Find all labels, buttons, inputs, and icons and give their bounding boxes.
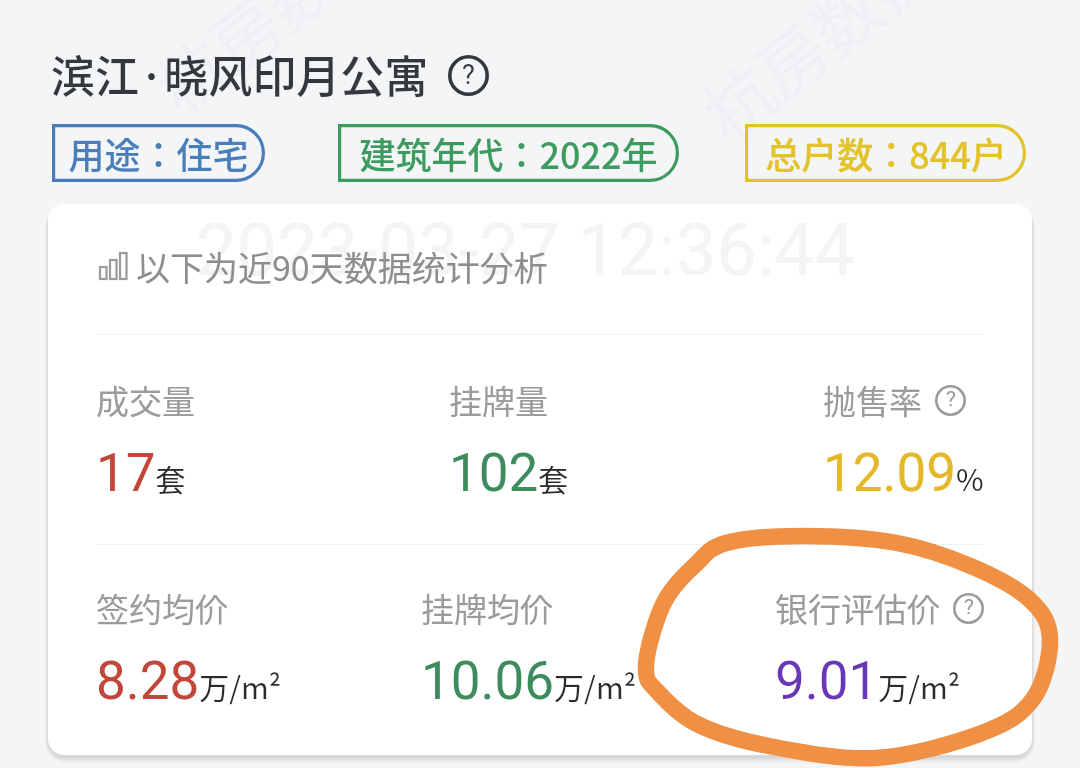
staticText: 杭房数据 bbox=[133, 0, 408, 133]
staticText: 8.28万/m² bbox=[96, 650, 282, 712]
button[interactable]: 用途：住宅 bbox=[52, 124, 265, 182]
staticText: 12.09% bbox=[823, 442, 984, 504]
staticText: 102套 bbox=[449, 442, 569, 504]
staticText: 以下为近90天数据统计分析 bbox=[136, 242, 548, 291]
staticText: 9.01万/m² bbox=[775, 650, 961, 712]
button[interactable]: 总户数：844户 bbox=[745, 124, 1026, 182]
staticText: 签约均价 bbox=[96, 584, 228, 632]
button[interactable]: 指标说明 bbox=[935, 385, 966, 416]
staticText: 总户数：844户 bbox=[765, 127, 1007, 179]
staticText: 2023-03-27 12:36:44 bbox=[196, 208, 856, 292]
staticText: 抛售率 bbox=[823, 376, 922, 424]
staticText: 杭房数据 bbox=[680, 463, 955, 709]
staticText: 杭房数据 bbox=[133, 437, 408, 683]
button[interactable]: 指标说明 bbox=[953, 593, 984, 624]
staticText: ? bbox=[964, 595, 974, 620]
staticText: 银行评估价 bbox=[775, 584, 940, 632]
staticText: 滨江·晓风印月公寓 bbox=[51, 42, 429, 106]
staticText: 17套 bbox=[96, 442, 186, 504]
staticText: 挂牌量 bbox=[449, 376, 548, 424]
staticText: 建筑年代：2022年 bbox=[359, 127, 658, 179]
staticText: ? bbox=[946, 387, 956, 412]
staticText: 杭房数据 bbox=[680, 0, 955, 159]
staticText: 成交量 bbox=[96, 376, 195, 424]
button[interactable]: 楼盘说明 bbox=[448, 55, 489, 96]
button[interactable]: 建筑年代：2022年 bbox=[338, 124, 679, 182]
staticText: 挂牌均价 bbox=[421, 584, 553, 632]
staticText: 10.06万/m² bbox=[421, 650, 636, 712]
staticText: ? bbox=[462, 59, 475, 91]
staticText: 用途：住宅 bbox=[68, 127, 249, 179]
